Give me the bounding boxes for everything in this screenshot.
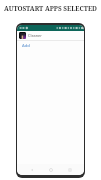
staticText: AUTOSTART APPS SELECTED	[0, 4, 101, 13]
button[interactable]: Recents	[65, 165, 74, 174]
button[interactable]: Home	[46, 165, 55, 174]
staticText: Add	[22, 43, 30, 49]
staticText: Cleaner	[28, 33, 42, 38]
button[interactable]: Add	[22, 43, 30, 49]
button[interactable]: Cleaner	[17, 31, 84, 40]
button[interactable]: Back	[27, 165, 36, 174]
